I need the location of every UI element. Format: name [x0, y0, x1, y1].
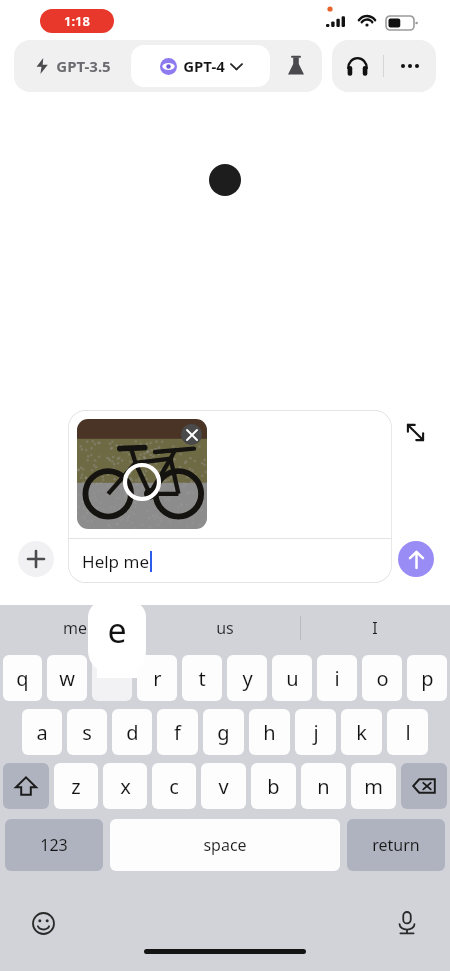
- staticText: i: [334, 665, 340, 692]
- button[interactable]: h: [249, 709, 290, 755]
- staticText: f: [174, 719, 181, 746]
- staticText: m: [364, 773, 383, 800]
- button[interactable]: Remove image: [181, 424, 202, 445]
- button[interactable]: Backspace: [401, 763, 447, 809]
- staticText: k: [356, 719, 367, 746]
- staticText: I: [372, 617, 378, 639]
- button[interactable]: Dictation: [390, 906, 424, 940]
- button[interactable]: k: [341, 709, 382, 755]
- staticText: x: [120, 773, 131, 800]
- button[interactable]: Add attachment: [18, 541, 54, 577]
- button[interactable]: q: [3, 655, 42, 701]
- staticText: n: [317, 773, 330, 800]
- button[interactable]: [92, 655, 132, 701]
- button[interactable]: 123: [5, 819, 103, 871]
- staticText: us: [216, 617, 234, 639]
- staticText: 123: [40, 834, 68, 856]
- staticText: h: [263, 719, 276, 746]
- button[interactable]: f: [157, 709, 198, 755]
- button[interactable]: return: [347, 819, 445, 871]
- staticText: o: [376, 665, 389, 692]
- staticText: w: [59, 665, 75, 692]
- staticText: q: [16, 665, 29, 692]
- button[interactable]: r: [137, 655, 177, 701]
- button[interactable]: us: [150, 605, 300, 651]
- button[interactable]: z: [54, 763, 98, 809]
- button[interactable]: t: [182, 655, 222, 701]
- staticText: GPT-4: [183, 56, 225, 76]
- staticText: p: [421, 665, 434, 692]
- button[interactable]: me: [0, 605, 150, 651]
- staticText: g: [217, 719, 230, 746]
- button[interactable]: j: [295, 709, 336, 755]
- button[interactable]: More options: [384, 40, 436, 92]
- button[interactable]: u: [272, 655, 312, 701]
- staticText: b: [267, 773, 280, 800]
- staticText: me: [63, 617, 87, 639]
- button[interactable]: p: [407, 655, 447, 701]
- staticText: a: [36, 719, 48, 746]
- staticText: c: [169, 773, 179, 800]
- staticText: return: [372, 834, 420, 856]
- staticText: t: [198, 665, 206, 692]
- button[interactable]: o: [362, 655, 402, 701]
- button[interactable]: s: [67, 709, 107, 755]
- button[interactable]: space: [110, 819, 340, 871]
- button[interactable]: y: [227, 655, 267, 701]
- button[interactable]: b: [251, 763, 296, 809]
- staticText: e: [107, 607, 127, 653]
- staticText: Help me: [82, 550, 149, 573]
- button[interactable]: Voice chat: [332, 40, 383, 92]
- staticText: u: [286, 665, 299, 692]
- staticText: l: [405, 719, 411, 746]
- staticText: v: [218, 773, 229, 800]
- button[interactable]: Emoji keyboard: [26, 906, 60, 940]
- button[interactable]: m: [351, 763, 396, 809]
- button[interactable]: Send message: [398, 541, 434, 577]
- staticText: r: [153, 665, 162, 692]
- button[interactable]: n: [301, 763, 346, 809]
- staticText: 1:18: [64, 12, 90, 30]
- staticText: z: [71, 773, 81, 800]
- button[interactable]: Shift: [3, 763, 49, 809]
- button[interactable]: I: [300, 605, 450, 651]
- staticText: space: [203, 834, 247, 856]
- staticText: s: [82, 719, 92, 746]
- button[interactable]: GPT-3.5: [14, 40, 131, 92]
- button[interactable]: v: [201, 763, 246, 809]
- button[interactable]: w: [47, 655, 87, 701]
- staticText: y: [242, 665, 253, 692]
- button[interactable]: Help me: [68, 539, 392, 583]
- button[interactable]: c: [152, 763, 196, 809]
- staticText: j: [313, 719, 319, 746]
- button[interactable]: Labs: [270, 40, 322, 92]
- button[interactable]: i: [317, 655, 357, 701]
- button[interactable]: l: [387, 709, 428, 755]
- button[interactable]: a: [22, 709, 62, 755]
- staticText: GPT-3.5: [56, 56, 111, 76]
- button[interactable]: d: [112, 709, 152, 755]
- button[interactable]: Expand composer: [398, 415, 432, 449]
- staticText: d: [126, 719, 139, 746]
- button[interactable]: g: [203, 709, 244, 755]
- button[interactable]: x: [103, 763, 147, 809]
- button[interactable]: GPT-4: [131, 45, 270, 87]
